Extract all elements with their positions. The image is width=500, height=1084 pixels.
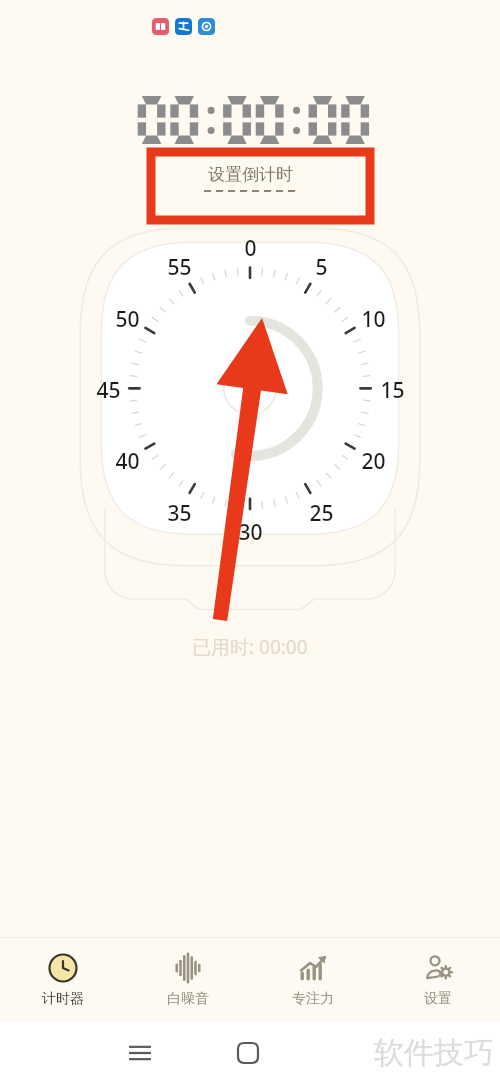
staticText: 设置 [424, 990, 452, 1008]
staticText: 20 [361, 447, 386, 475]
button[interactable]: 白噪音 [125, 945, 250, 1016]
staticText: 已用时: 00:00 [192, 634, 308, 660]
staticText: 55 [167, 253, 192, 281]
button[interactable]: 设置倒计时 [180, 158, 320, 198]
staticText: 计时器 [42, 990, 84, 1008]
staticText: 软件技巧 [374, 1034, 494, 1072]
staticText: 45 [96, 376, 121, 404]
staticText: 专注力 [292, 990, 334, 1008]
staticText: 0 [244, 234, 257, 262]
button[interactable]: Recents [118, 1031, 162, 1075]
button[interactable]: 计时器 [0, 945, 125, 1016]
staticText: 40 [115, 447, 140, 475]
button[interactable]: Home [226, 1031, 270, 1075]
staticText: 30 [238, 518, 263, 546]
staticText: 25 [309, 499, 334, 527]
staticText: 10 [361, 305, 386, 333]
staticText: 5 [315, 253, 328, 281]
staticText: 白噪音 [167, 990, 209, 1008]
staticText: 50 [115, 305, 140, 333]
staticText: 35 [167, 499, 192, 527]
button[interactable]: 专注力 [250, 945, 375, 1016]
staticText: 设置倒计时 [208, 164, 293, 185]
staticText: 15 [380, 376, 405, 404]
button[interactable]: 设置 [375, 945, 500, 1016]
